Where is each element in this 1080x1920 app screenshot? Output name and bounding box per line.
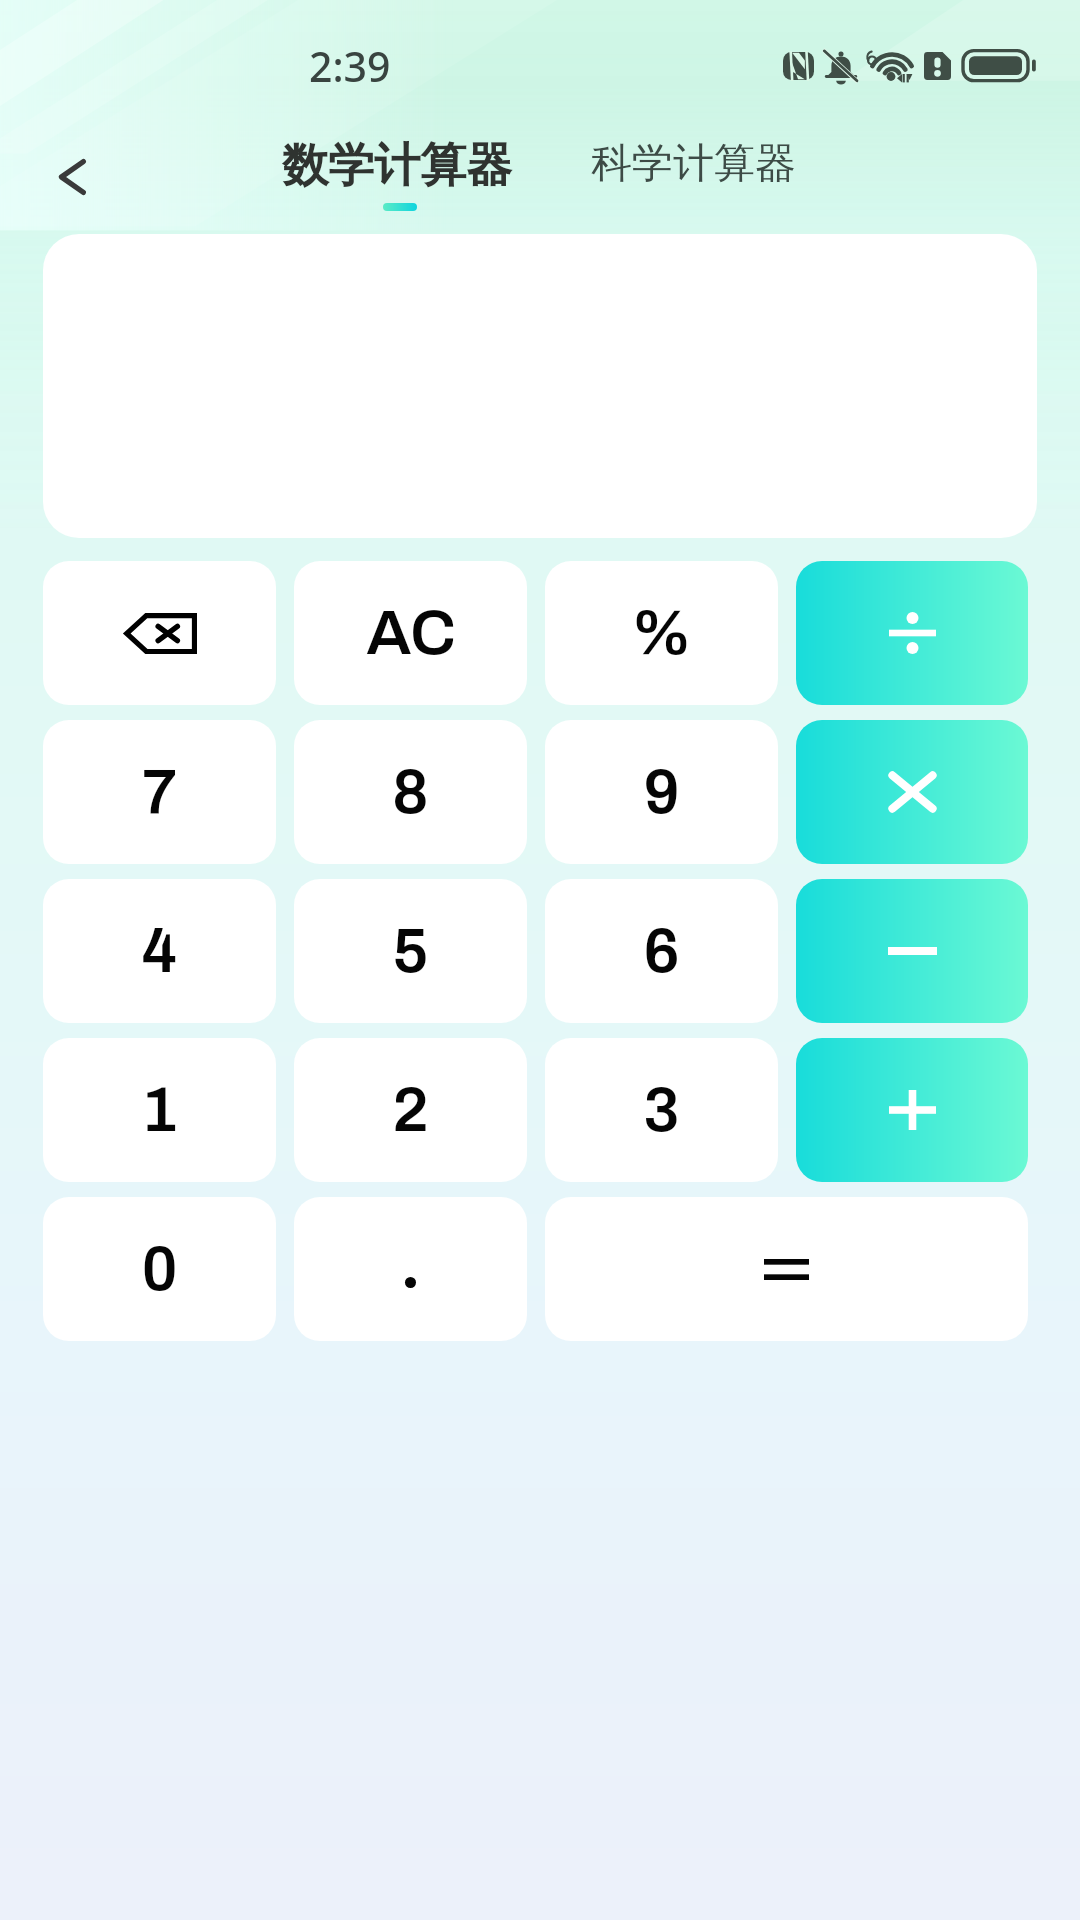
button[interactable]: Multiply — [796, 720, 1028, 864]
staticText: 8 — [392, 758, 429, 827]
staticText: 9 — [643, 758, 680, 827]
button[interactable]: Equals — [545, 1197, 1028, 1341]
button[interactable]: 数学计算器 — [270, 131, 524, 217]
staticText: 2:39 — [309, 38, 391, 94]
button[interactable]: 1 — [43, 1038, 276, 1182]
button[interactable]: 5 — [294, 879, 527, 1023]
button[interactable]: % — [545, 561, 778, 705]
staticText: % — [631, 599, 692, 668]
button[interactable]: Plus — [796, 1038, 1028, 1182]
button[interactable]: 科学计算器 — [579, 132, 808, 196]
button[interactable]: AC — [294, 561, 527, 705]
button[interactable]: 0 — [43, 1197, 276, 1341]
button[interactable]: 3 — [545, 1038, 778, 1182]
staticText: 1 — [141, 1076, 178, 1145]
staticText: 5 — [392, 917, 429, 986]
button[interactable]: 8 — [294, 720, 527, 864]
button[interactable]: 9 — [545, 720, 778, 864]
button[interactable]: 4 — [43, 879, 276, 1023]
staticText: 2 — [392, 1076, 429, 1145]
staticText: 0 — [141, 1235, 178, 1304]
button[interactable]: Decimal point — [294, 1197, 527, 1341]
staticText: 数学计算器 — [282, 137, 512, 195]
button[interactable]: 7 — [43, 720, 276, 864]
button[interactable]: Backspace — [43, 561, 276, 705]
staticText: 7 — [141, 758, 178, 827]
staticText: 科学计算器 — [591, 138, 796, 190]
staticText: AC — [366, 599, 456, 668]
button[interactable]: Back — [41, 144, 107, 210]
button[interactable]: 2 — [294, 1038, 527, 1182]
staticText: 3 — [643, 1076, 680, 1145]
button[interactable]: Divide — [796, 561, 1028, 705]
button[interactable]: Minus — [796, 879, 1028, 1023]
staticText: 4 — [141, 917, 178, 986]
staticText: 6 — [643, 917, 680, 986]
button[interactable]: 6 — [545, 879, 778, 1023]
